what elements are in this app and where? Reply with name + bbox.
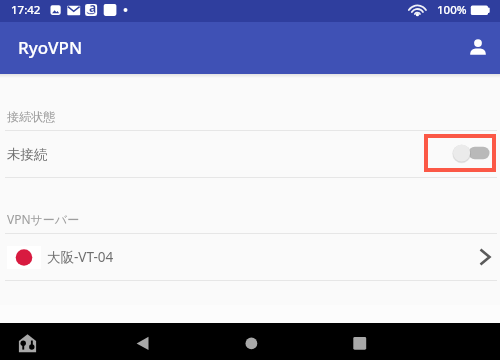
staticText: VPNサーバー xyxy=(7,211,80,227)
staticText: 大阪-VT-04 xyxy=(47,248,114,266)
button[interactable]: 大阪-VT-04 xyxy=(0,234,500,280)
button[interactable]: Account xyxy=(457,27,499,69)
button[interactable]: 未接続 xyxy=(0,131,500,177)
staticText: RyoVPN xyxy=(18,36,83,59)
staticText: a xyxy=(89,0,97,15)
button[interactable]: Toggle VPN connection xyxy=(428,138,492,168)
staticText: 接続状態 xyxy=(7,109,55,124)
staticText: 100% xyxy=(437,2,467,18)
staticText: 17:42 xyxy=(11,2,41,18)
staticText: 未接続 xyxy=(7,146,48,163)
